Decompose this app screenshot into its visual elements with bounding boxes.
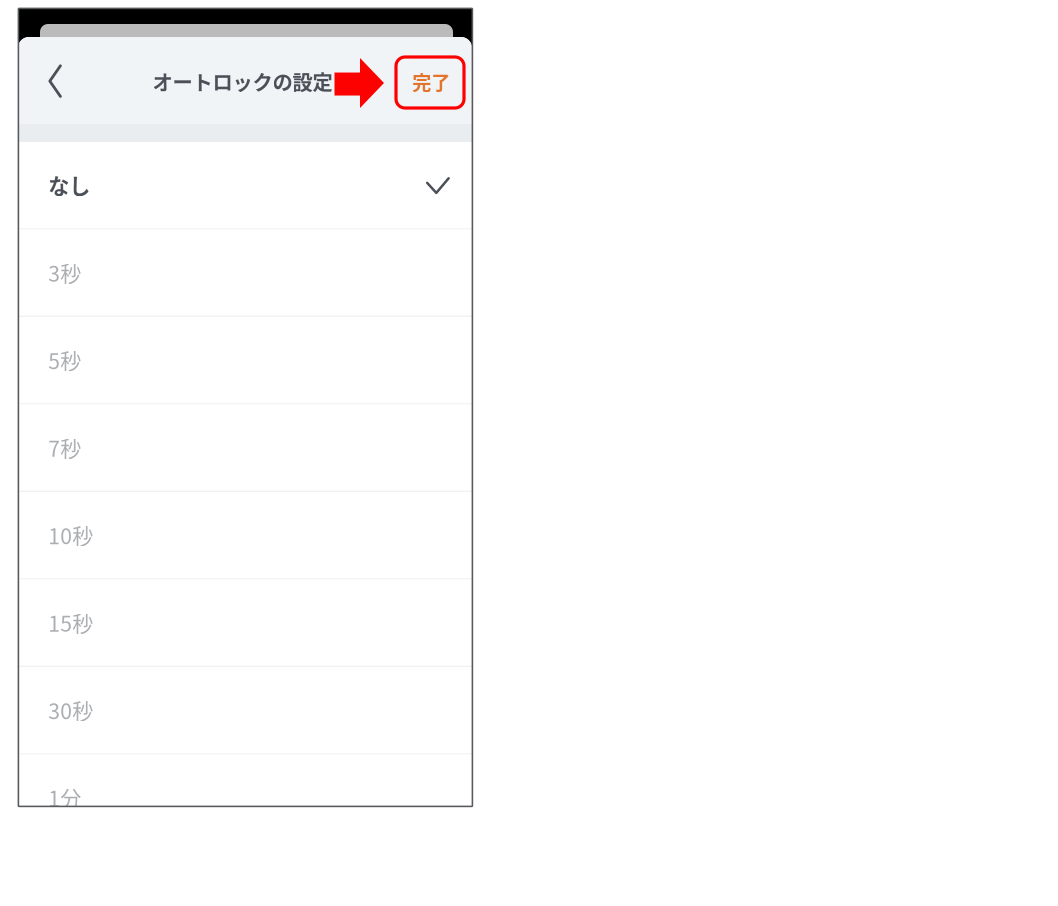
button[interactable]: 完了 xyxy=(398,57,464,106)
button[interactable]: 1分 xyxy=(18,754,472,841)
staticText: 完了 xyxy=(412,68,450,95)
button[interactable]: 15秒 xyxy=(18,579,472,666)
button[interactable]: なし xyxy=(18,142,472,228)
button[interactable]: 3秒 xyxy=(18,229,472,316)
staticText: 15秒 xyxy=(48,607,93,638)
button[interactable]: 30秒 xyxy=(18,667,472,753)
staticText: 30秒 xyxy=(48,695,93,725)
button[interactable]: 7秒 xyxy=(18,404,472,491)
staticText: 7秒 xyxy=(48,432,81,463)
staticText: 5秒 xyxy=(48,345,81,375)
staticText: 3秒 xyxy=(48,257,81,288)
staticText: 1分 xyxy=(48,782,81,813)
button[interactable]: Back xyxy=(36,53,82,109)
staticText: なし xyxy=(48,170,90,200)
button[interactable]: 10秒 xyxy=(18,492,472,578)
button[interactable]: 5秒 xyxy=(18,317,472,403)
staticText: 10秒 xyxy=(48,520,93,550)
staticText: オートロックの設定 xyxy=(152,67,332,96)
